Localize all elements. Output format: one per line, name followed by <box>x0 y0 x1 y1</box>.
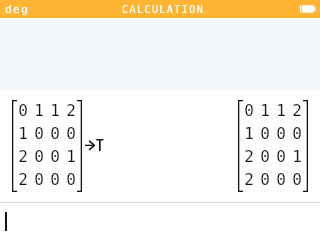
staticText: 0 <box>34 124 44 143</box>
staticText: 0 <box>50 124 60 143</box>
staticText: deg <box>5 3 30 16</box>
staticText: 0 <box>18 101 28 120</box>
staticText: 1 <box>276 101 286 120</box>
staticText: 0 <box>292 124 302 143</box>
staticText: 0 <box>50 147 60 166</box>
staticText: 0 <box>260 170 270 189</box>
staticText: CALCULATION <box>122 4 205 16</box>
staticText: 1 <box>260 101 270 120</box>
staticText: 1 <box>66 147 76 166</box>
staticText: 1 <box>50 101 60 120</box>
staticText: 0 <box>292 170 302 189</box>
staticText: 1 <box>18 124 28 143</box>
staticText: 0 <box>276 147 286 166</box>
staticText: 1 <box>34 101 44 120</box>
staticText: 0 <box>244 101 254 120</box>
button[interactable]: 0 <box>0 90 320 202</box>
button[interactable]: Battery status <box>296 0 320 18</box>
staticText: 0 <box>260 147 270 166</box>
staticText: 0 <box>66 170 76 189</box>
staticText: 0 <box>34 170 44 189</box>
button[interactable] <box>0 203 320 240</box>
staticText: 1 <box>244 124 254 143</box>
staticText: 0 <box>276 124 286 143</box>
other: transpose <box>85 138 105 152</box>
staticText: 0 <box>260 124 270 143</box>
staticText: 0 <box>34 147 44 166</box>
staticText: 2 <box>244 170 254 189</box>
staticText: 2 <box>18 170 28 189</box>
button[interactable]: deg <box>0 0 36 18</box>
staticText: 2 <box>18 147 28 166</box>
staticText: 0 <box>276 170 286 189</box>
staticText: 2 <box>66 101 76 120</box>
staticText: 1 <box>292 147 302 166</box>
staticText: 2 <box>244 147 254 166</box>
staticText: 2 <box>292 101 302 120</box>
staticText: 0 <box>66 124 76 143</box>
staticText: 0 <box>50 170 60 189</box>
